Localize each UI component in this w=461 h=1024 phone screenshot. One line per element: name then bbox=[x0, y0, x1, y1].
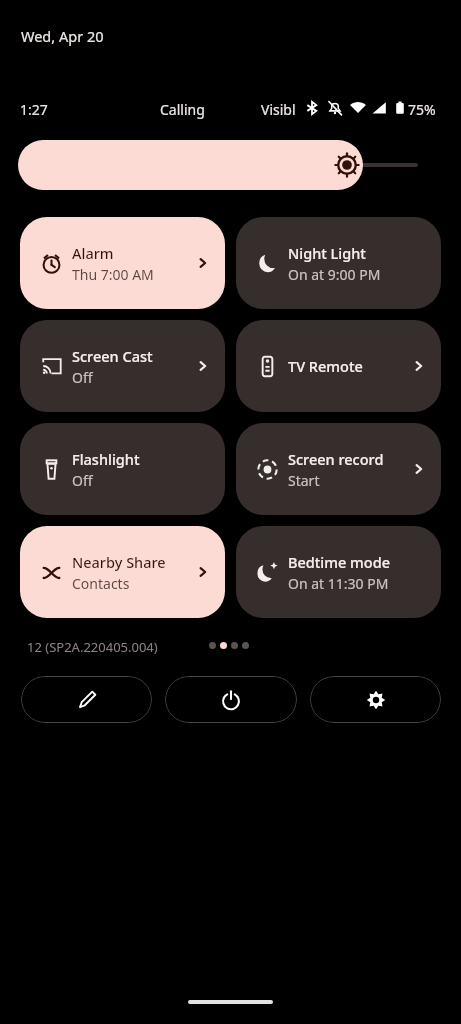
staticText: Screen Cast bbox=[72, 346, 153, 366]
button[interactable]: Flashlight bbox=[20, 423, 225, 515]
staticText: Off bbox=[72, 368, 93, 387]
staticText: 75% bbox=[408, 100, 436, 119]
button[interactable]: Brightness bbox=[18, 140, 363, 190]
button[interactable]: TV Remote bbox=[236, 320, 441, 412]
staticText: Alarm bbox=[72, 243, 114, 263]
button[interactable]: Nearby Share bbox=[20, 526, 225, 618]
staticText: Wed, Apr 20 bbox=[21, 26, 104, 46]
staticText: Night Light bbox=[288, 243, 366, 263]
button[interactable]: Screen record bbox=[236, 423, 441, 515]
staticText: 12 (SP2A.220405.004) bbox=[27, 638, 158, 656]
staticText: Start bbox=[288, 471, 320, 490]
staticText: Contacts bbox=[72, 574, 130, 593]
staticText: TV Remote bbox=[288, 356, 363, 376]
staticText: Flashlight bbox=[72, 449, 140, 469]
button[interactable]: Bedtime mode bbox=[236, 526, 441, 618]
staticText: Nearby Share bbox=[72, 552, 166, 572]
button[interactable]: Power bbox=[165, 676, 297, 723]
staticText: On at 9:00 PM bbox=[288, 265, 381, 284]
staticText: Visible bbox=[261, 100, 301, 119]
button[interactable]: Alarm bbox=[20, 217, 225, 309]
button[interactable]: Screen Cast bbox=[20, 320, 225, 412]
staticText: On at 11:30 PM bbox=[288, 574, 389, 593]
staticText: Bedtime mode bbox=[288, 552, 390, 572]
button[interactable]: Edit bbox=[21, 676, 152, 723]
button[interactable]: Settings bbox=[310, 676, 441, 723]
staticText: 1:27 bbox=[20, 100, 48, 119]
staticText: Thu 7:00 AM bbox=[72, 265, 154, 284]
staticText: Off bbox=[72, 471, 93, 490]
staticText: Screen record bbox=[288, 449, 384, 469]
staticText: Calling bbox=[160, 100, 205, 119]
button[interactable]: Night Light bbox=[236, 217, 441, 309]
